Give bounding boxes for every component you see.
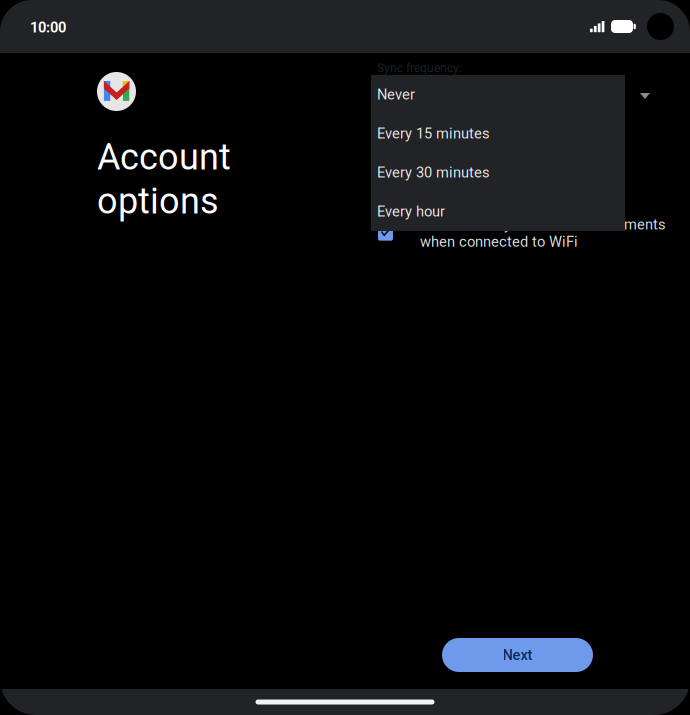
staticText: Account <box>97 136 231 178</box>
staticText: options <box>97 180 219 222</box>
staticText: 10:00 <box>30 19 66 36</box>
button[interactable]: Never <box>371 75 625 114</box>
button[interactable]: Next <box>442 638 593 672</box>
staticText: Next <box>502 646 532 664</box>
button[interactable]: Sync email from this account <box>377 172 667 189</box>
button[interactable]: Automatically download attachments when … <box>378 216 668 250</box>
staticText: Sync frequency: <box>377 61 462 75</box>
button[interactable]: Notify me when email arrives <box>377 128 667 145</box>
staticText: Every 30 minutes <box>377 164 490 181</box>
button[interactable]: Every 30 minutes <box>371 153 625 192</box>
button[interactable]: Every hour <box>371 192 625 231</box>
staticText: Notify me when email arrives <box>419 128 612 145</box>
staticText: Every 15 minutes <box>377 125 490 142</box>
button[interactable]: Every 15 minutes <box>371 114 625 153</box>
staticText: Automatically download attachments when … <box>420 216 666 250</box>
staticText: Sync email from this account <box>419 172 613 189</box>
button[interactable]: Sync frequency <box>631 82 659 110</box>
staticText: Every hour <box>377 203 445 220</box>
staticText: Never <box>377 86 415 103</box>
